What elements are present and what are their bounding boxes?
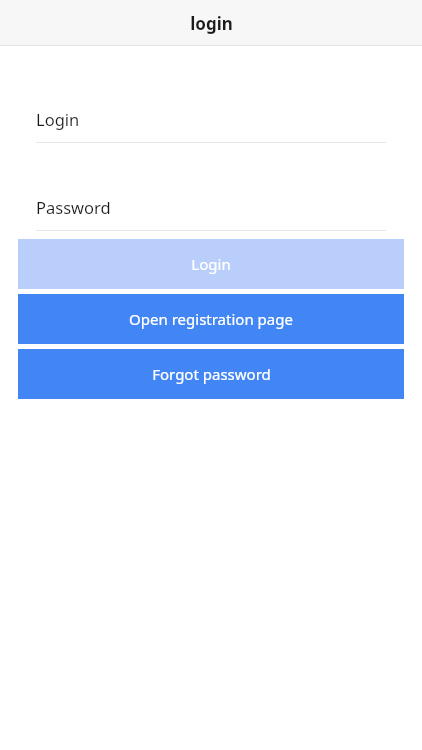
button[interactable]: Open registration page [18, 294, 404, 344]
button[interactable]: Login [36, 104, 386, 134]
staticText: Forgot password [152, 364, 271, 384]
staticText: Password [36, 196, 111, 218]
button[interactable]: Password [36, 192, 386, 222]
staticText: Login [191, 254, 231, 274]
staticText: login [190, 12, 233, 35]
button[interactable]: Forgot password [18, 349, 404, 399]
button[interactable]: Login [18, 239, 404, 289]
staticText: Open registration page [129, 309, 293, 329]
staticText: Login [36, 108, 80, 130]
